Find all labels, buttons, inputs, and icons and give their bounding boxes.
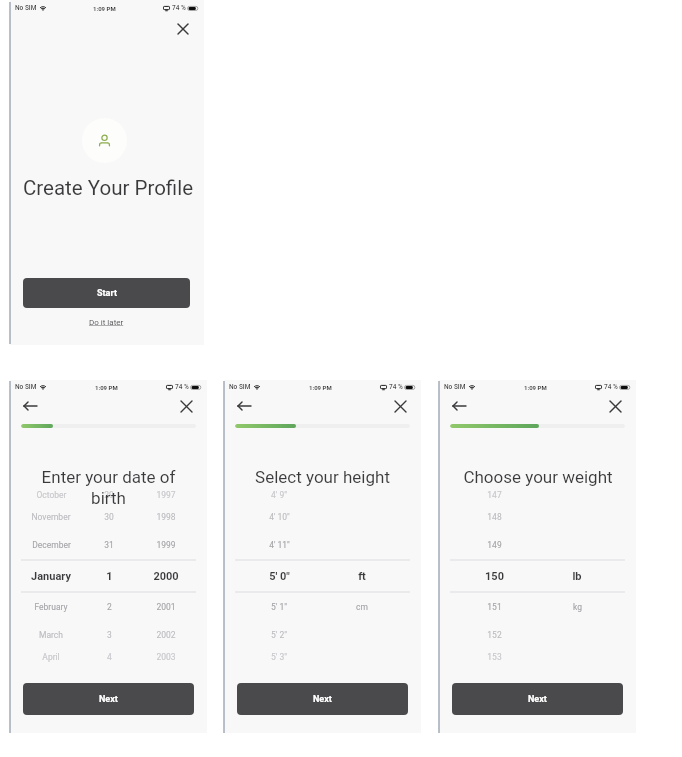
staticText: 5' 0"	[269, 570, 290, 583]
button[interactable]: Close	[390, 396, 410, 416]
button[interactable]: 153	[439, 648, 636, 666]
button[interactable]: 151	[439, 598, 636, 616]
staticText: October	[36, 490, 67, 500]
staticText: 74 %	[389, 383, 403, 391]
staticText: 30	[104, 512, 114, 522]
staticText: March	[39, 630, 63, 640]
button[interactable]: 5' 2"	[224, 626, 421, 644]
button[interactable]: 150	[439, 567, 636, 585]
staticText: 1999	[156, 540, 176, 550]
button[interactable]: Next	[237, 683, 408, 715]
staticText: Select your height	[255, 467, 390, 487]
button[interactable]: Next	[452, 683, 623, 715]
button[interactable]: 152	[439, 626, 636, 644]
button[interactable]: Start	[23, 278, 190, 308]
staticText: 5' 3"	[271, 652, 287, 662]
staticText: 1997	[156, 490, 176, 500]
staticText: January	[31, 570, 71, 583]
staticText: Next	[99, 694, 118, 705]
button[interactable]: 5' 0"	[224, 567, 421, 585]
staticText: 74 %	[172, 4, 186, 12]
staticText: 4' 9"	[271, 490, 287, 500]
staticText: 5' 2"	[271, 630, 287, 640]
staticText: 5' 1"	[271, 602, 287, 612]
button[interactable]: 5' 1"	[224, 598, 421, 616]
button[interactable]: 147	[439, 486, 636, 504]
staticText: 31	[104, 540, 114, 550]
staticText: cm	[356, 602, 368, 612]
staticText: 2	[107, 602, 112, 612]
staticText: Start	[97, 288, 117, 299]
button[interactable]: 5' 3"	[224, 648, 421, 666]
staticText: November	[31, 512, 71, 522]
button[interactable]: April	[10, 648, 207, 666]
staticText: 3	[107, 630, 112, 640]
button[interactable]: Close	[173, 19, 193, 39]
button[interactable]: October	[10, 486, 207, 504]
button[interactable]: Back	[20, 396, 40, 416]
button[interactable]: November	[10, 508, 207, 526]
staticText: Create Your Profile	[23, 176, 194, 200]
staticText: No SIM	[15, 383, 37, 391]
button[interactable]: 4' 10"	[224, 508, 421, 526]
staticText: 4' 11"	[269, 540, 290, 550]
staticText: kg	[573, 602, 582, 612]
button[interactable]: March	[10, 626, 207, 644]
button[interactable]: Close	[605, 396, 625, 416]
staticText: 2002	[156, 630, 176, 640]
staticText: 2001	[156, 602, 176, 612]
staticText: ft	[358, 570, 366, 583]
staticText: 148	[487, 512, 502, 522]
staticText: 1:09 PM	[524, 384, 547, 391]
staticText: 1:09 PM	[309, 384, 332, 391]
staticText: No SIM	[15, 4, 37, 12]
staticText: No SIM	[444, 383, 466, 391]
staticText: 149	[487, 540, 502, 550]
button[interactable]: Back	[449, 396, 469, 416]
staticText: February	[34, 602, 68, 612]
staticText: 74 %	[175, 383, 189, 391]
staticText: Choose your weight	[463, 467, 613, 487]
button[interactable]: December	[10, 536, 207, 554]
staticText: No SIM	[229, 383, 251, 391]
staticText: 1998	[156, 512, 176, 522]
staticText: 1:09 PM	[93, 5, 116, 12]
staticText: 4	[107, 652, 112, 662]
staticText: 147	[487, 490, 502, 500]
staticText: Next	[528, 694, 547, 705]
button[interactable]: 4' 9"	[224, 486, 421, 504]
staticText: 4' 10"	[269, 512, 290, 522]
button[interactable]: 148	[439, 508, 636, 526]
staticText: 153	[487, 652, 502, 662]
staticText: December	[32, 540, 71, 550]
staticText: 151	[487, 602, 502, 612]
button[interactable]: Back	[234, 396, 254, 416]
staticText: 1:09 PM	[95, 384, 118, 391]
button[interactable]: Close	[176, 396, 196, 416]
staticText: 2003	[156, 652, 176, 662]
staticText: lb	[572, 570, 582, 583]
staticText: 2000	[153, 570, 179, 583]
button[interactable]: Next	[23, 683, 194, 715]
staticText: 74 %	[604, 383, 618, 391]
button[interactable]: 149	[439, 536, 636, 554]
button[interactable]: 4' 11"	[224, 536, 421, 554]
staticText: April	[42, 652, 60, 662]
staticText: 150	[485, 570, 504, 583]
button[interactable]: February	[10, 598, 207, 616]
button[interactable]: Do it later	[89, 318, 124, 327]
staticText: Next	[313, 694, 332, 705]
staticText: 152	[487, 630, 502, 640]
button[interactable]: January	[10, 567, 207, 585]
staticText: 29	[104, 490, 114, 500]
staticText: Enter your date of birth	[32, 467, 185, 508]
staticText: 1	[106, 570, 113, 583]
